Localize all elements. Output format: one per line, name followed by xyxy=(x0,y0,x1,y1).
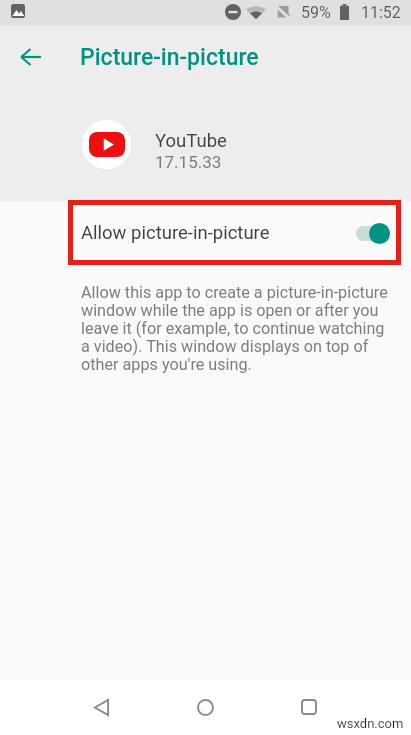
button[interactable]: Recent apps xyxy=(285,683,333,731)
button[interactable]: Allow picture-in-picture toggle xyxy=(355,218,393,248)
button[interactable]: Back xyxy=(77,683,125,731)
button[interactable]: Allow picture-in-picture xyxy=(0,201,411,264)
button[interactable]: Home xyxy=(181,683,229,731)
staticText: 11:52 xyxy=(361,3,401,22)
staticText: Allow picture-in-picture xyxy=(81,222,270,244)
staticText: Allow this app to create a picture-in-pi… xyxy=(81,284,390,374)
staticText: YouTube xyxy=(155,130,227,152)
staticText: wsxdn.com xyxy=(337,716,404,731)
button[interactable]: Back xyxy=(13,40,47,74)
staticText: 17.15.33 xyxy=(155,152,222,172)
staticText: Picture-in-picture xyxy=(80,44,259,71)
staticText: 59% xyxy=(301,3,331,22)
